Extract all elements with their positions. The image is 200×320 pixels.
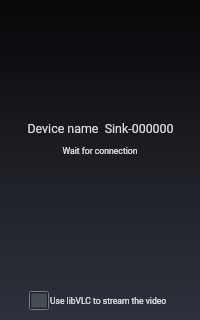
staticText: Wait for connection [62, 146, 138, 156]
staticText: Device name Sink-000000 [27, 121, 174, 136]
staticText: Use libVLC to stream the video [50, 296, 167, 306]
button[interactable]: Use libVLC to stream the video checkbox [29, 291, 167, 310]
other: Use libVLC to stream the video checkbox [29, 291, 49, 310]
